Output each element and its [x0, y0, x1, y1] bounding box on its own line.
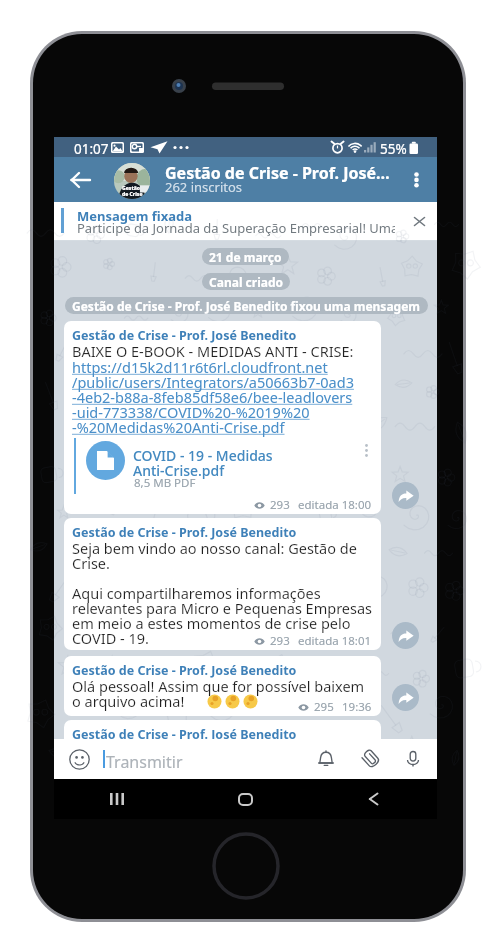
staticText: Olá pessoal! Assim que for possível baix… — [72, 676, 365, 711]
staticText: 21 de março — [209, 249, 282, 265]
staticText: 295 — [314, 699, 334, 715]
staticText: Gestão de Crise - Prof. José Benedito — [72, 662, 297, 679]
staticText: Mensagem fixada — [77, 207, 193, 225]
staticText: editada 18:01 — [298, 633, 372, 649]
staticText: COVID - 19 - Medidas Anti-Crise.pdf — [133, 446, 273, 480]
button[interactable]: Recent apps — [54, 779, 181, 819]
button[interactable]: Notifications — [312, 745, 340, 773]
button[interactable]: File options — [358, 441, 374, 459]
staticText: 19:36 — [342, 699, 372, 715]
button[interactable]: Close pinned message — [404, 206, 434, 236]
staticText: Gestão de Crise - Prof. José Benedito — [72, 726, 297, 743]
staticText: Seja bem vindo ao nosso canal: Gestão de… — [72, 538, 373, 648]
staticText: 293 — [270, 633, 290, 649]
button[interactable]: Download document — [86, 441, 125, 480]
button[interactable]: Voice message — [399, 745, 427, 773]
staticText: 8,5 MB PDF — [134, 475, 196, 491]
button[interactable]: Back — [54, 157, 437, 202]
staticText: https://d15k2d11r6t6rl.cloudfront.net /p… — [72, 357, 354, 437]
button[interactable]: Home — [181, 779, 309, 819]
staticText: Gestão de Crise - Prof. José Benedito fi… — [72, 298, 421, 314]
button[interactable]: Back — [62, 157, 98, 202]
staticText: Gestão de Crise - Prof. José… — [165, 162, 395, 184]
staticText: Gestão de Crise — [122, 185, 143, 198]
button[interactable]: Forward message — [392, 684, 419, 711]
button[interactable]: Forward message — [392, 482, 419, 509]
button[interactable]: Forward message — [392, 622, 419, 649]
button[interactable]: Emoji — [68, 748, 91, 771]
button[interactable]: Mensagem fixada — [54, 202, 437, 241]
button[interactable]: Gestão de Crise - Prof. José Benedito — [64, 321, 381, 514]
staticText: 55% — [380, 140, 407, 158]
staticText: 293 — [270, 497, 290, 513]
staticText: BAIXE O E-BOOK - MEDIDAS ANTI - CRISE: — [72, 341, 354, 361]
staticText: Gestão de Crise - Prof. José Benedito — [72, 524, 297, 541]
staticText: editada 18:00 — [298, 497, 372, 513]
staticText: Canal criado — [209, 274, 283, 290]
button[interactable]: Back — [309, 779, 437, 819]
button[interactable]: Gestão de Crise - Prof. José Benedito — [64, 720, 381, 760]
staticText: Gestão de Crise - Prof. José Benedito — [72, 327, 297, 344]
button[interactable]: Gestão de Crise - Prof. José Benedito — [64, 656, 381, 716]
button[interactable]: More options — [402, 157, 430, 202]
button[interactable]: Gestão de Crise - Prof. José Benedito — [64, 518, 381, 650]
staticText: 262 inscritos — [165, 178, 243, 196]
button[interactable]: Attach file — [357, 745, 385, 773]
staticText: Participe da Jornada da Superação Empres… — [77, 219, 395, 237]
button[interactable]: Channel avatar — [114, 163, 150, 199]
staticText: 01:07 — [74, 140, 109, 158]
staticText: Transmitir — [106, 751, 183, 773]
